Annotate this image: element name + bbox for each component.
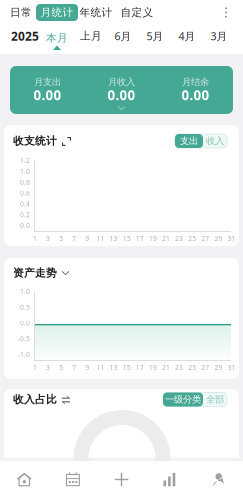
staticText: 4月	[178, 29, 195, 43]
staticText: 25	[188, 234, 196, 243]
button[interactable]: More options	[216, 2, 236, 23]
staticText: 1.2	[20, 156, 30, 165]
staticText: 23	[175, 363, 183, 372]
staticText: 支出	[180, 135, 198, 147]
staticText: 上月	[80, 29, 102, 42]
staticText: 9	[85, 363, 89, 372]
staticText: 本月	[46, 31, 68, 44]
staticText: 月支出	[34, 76, 61, 88]
staticText: 1	[33, 363, 37, 372]
staticText: 29	[214, 234, 222, 243]
staticText: 31	[227, 363, 235, 372]
staticText: 0.00	[107, 86, 135, 104]
staticText: 6月	[114, 29, 131, 43]
button[interactable]: 支出	[175, 134, 203, 148]
staticText: 0.8	[20, 178, 30, 187]
staticText: 收入	[206, 135, 224, 147]
staticText: 11	[96, 234, 104, 243]
staticText: 27	[201, 234, 209, 243]
staticText: 21	[162, 234, 170, 243]
staticText: 2025	[11, 28, 39, 44]
button[interactable]: 上月	[77, 30, 105, 42]
staticText: 5	[59, 234, 63, 243]
staticText: 15	[123, 363, 131, 372]
button[interactable]: Add	[97, 459, 146, 500]
button[interactable]: 全部	[203, 392, 227, 406]
staticText: 17	[136, 363, 144, 372]
button[interactable]: 日常	[6, 2, 36, 23]
staticText: 全部	[206, 394, 224, 405]
staticText: 19	[149, 363, 157, 372]
button[interactable]: 3月	[205, 30, 233, 42]
staticText: 15	[123, 234, 131, 243]
staticText: 自定义	[120, 6, 153, 19]
staticText: 29	[214, 363, 222, 372]
staticText: 1	[33, 234, 37, 243]
button[interactable]: 5月	[141, 30, 169, 42]
staticText: 17	[136, 234, 144, 243]
staticText: 11	[96, 363, 104, 372]
staticText: 13	[110, 234, 118, 243]
button[interactable]: 自定义	[118, 2, 156, 23]
staticText: -1.0	[18, 350, 30, 359]
button[interactable]: 月支出	[10, 66, 233, 114]
staticText: 7	[72, 234, 76, 243]
staticText: 31	[227, 234, 235, 243]
staticText: 9	[85, 234, 89, 243]
staticText: 一级分类	[165, 394, 201, 405]
staticText: 0.4	[20, 199, 30, 208]
staticText: 月收入	[108, 76, 135, 88]
button[interactable]: Home	[0, 459, 49, 500]
staticText: 1.0	[20, 287, 30, 296]
staticText: 0.0	[20, 319, 30, 327]
staticText: 0.5	[20, 303, 30, 312]
button[interactable]: Calendar	[49, 459, 97, 500]
staticText: 0.0	[20, 221, 30, 230]
staticText: 年统计	[79, 6, 112, 19]
button[interactable]: Statistics	[146, 459, 194, 500]
staticText: 0.00	[181, 86, 209, 104]
staticText: 21	[162, 363, 170, 372]
button[interactable]: 4月	[173, 30, 201, 42]
staticText: 1.0	[20, 167, 30, 176]
staticText: 0.6	[20, 189, 30, 197]
button[interactable]: 6月	[109, 30, 137, 42]
staticText: 13	[110, 363, 118, 372]
button[interactable]: 一级分类	[163, 392, 203, 406]
button[interactable]: Profile	[194, 459, 243, 500]
staticText: 27	[201, 363, 209, 372]
staticText: 7	[72, 363, 76, 372]
button[interactable]: 年统计	[77, 2, 115, 23]
staticText: 收入占比	[13, 393, 57, 406]
staticText: 3	[46, 363, 50, 372]
staticText: 5	[59, 363, 63, 372]
staticText: 资产走势	[13, 266, 57, 279]
staticText: 0.00	[33, 86, 61, 104]
staticText: 23	[175, 234, 183, 243]
button[interactable]: 收入	[203, 134, 227, 148]
staticText: 月统计	[40, 6, 73, 19]
button[interactable]: 本月	[43, 30, 71, 52]
staticText: 收支统计	[13, 134, 57, 147]
staticText: 3	[46, 234, 50, 243]
staticText: 0.2	[20, 210, 30, 219]
staticText: 3月	[210, 29, 227, 43]
staticText: 25	[188, 363, 196, 372]
staticText: 月结余	[182, 76, 209, 88]
staticText: 5月	[146, 29, 163, 43]
button[interactable]: 月统计	[36, 4, 78, 21]
staticText: 19	[149, 234, 157, 243]
staticText: 日常	[10, 6, 32, 19]
staticText: -0.5	[18, 334, 30, 343]
button[interactable]: 资产走势	[4, 262, 69, 284]
